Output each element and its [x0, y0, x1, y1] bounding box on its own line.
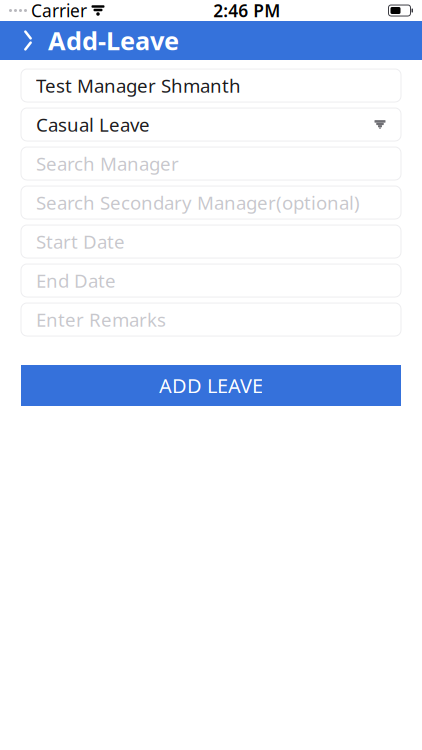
staticText: Search Secondary Manager(optional) — [36, 190, 360, 215]
button[interactable]: End Date — [21, 264, 401, 297]
button[interactable]: Test Manager Shmanth — [21, 69, 401, 102]
button[interactable]: Casual Leave — [21, 108, 401, 141]
staticText: Enter Remarks — [36, 307, 166, 332]
staticText: Add-Leave — [48, 24, 179, 57]
button[interactable]: Back — [8, 21, 48, 60]
button[interactable]: Enter Remarks — [21, 303, 401, 336]
staticText: Search Manager — [36, 151, 179, 176]
staticText: Carrier — [31, 0, 87, 22]
staticText: Start Date — [36, 229, 125, 254]
button[interactable]: Search Manager — [21, 147, 401, 180]
staticText: End Date — [36, 268, 116, 293]
staticText: 2:46 PM — [213, 0, 280, 22]
button[interactable]: Search Secondary Manager(optional) — [21, 186, 401, 219]
staticText: ADD LEAVE — [159, 372, 263, 399]
staticText: Test Manager Shmanth — [36, 73, 241, 98]
staticText: Casual Leave — [36, 112, 150, 137]
button[interactable]: ADD LEAVE — [21, 365, 401, 406]
button[interactable]: Start Date — [21, 225, 401, 258]
